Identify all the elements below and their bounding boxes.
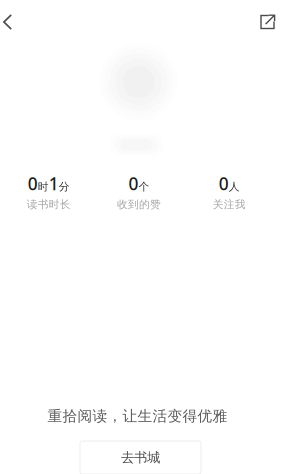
staticText: 0 — [28, 172, 38, 195]
button[interactable]: 去书城 — [80, 441, 201, 474]
staticText: 人 — [229, 180, 240, 193]
staticText: 时 — [38, 180, 49, 193]
staticText: 重拾阅读，让生活变得优雅 — [47, 407, 227, 425]
staticText: 收到的赞 — [117, 198, 161, 211]
button[interactable]: 0 — [184, 172, 274, 211]
staticText: 关注我 — [213, 198, 246, 211]
staticText: 分 — [59, 180, 70, 193]
button[interactable]: Back — [3, 7, 29, 37]
staticText: 去书城 — [121, 449, 160, 466]
staticText: 个 — [138, 180, 149, 193]
button[interactable]: Share — [249, 7, 275, 37]
button[interactable]: 0 — [3, 172, 94, 211]
staticText: 0 — [219, 172, 229, 195]
staticText: 读书时长 — [27, 198, 71, 211]
staticText: 0 — [128, 172, 138, 195]
staticText: 1 — [49, 172, 59, 195]
button[interactable]: 0 — [94, 172, 184, 211]
